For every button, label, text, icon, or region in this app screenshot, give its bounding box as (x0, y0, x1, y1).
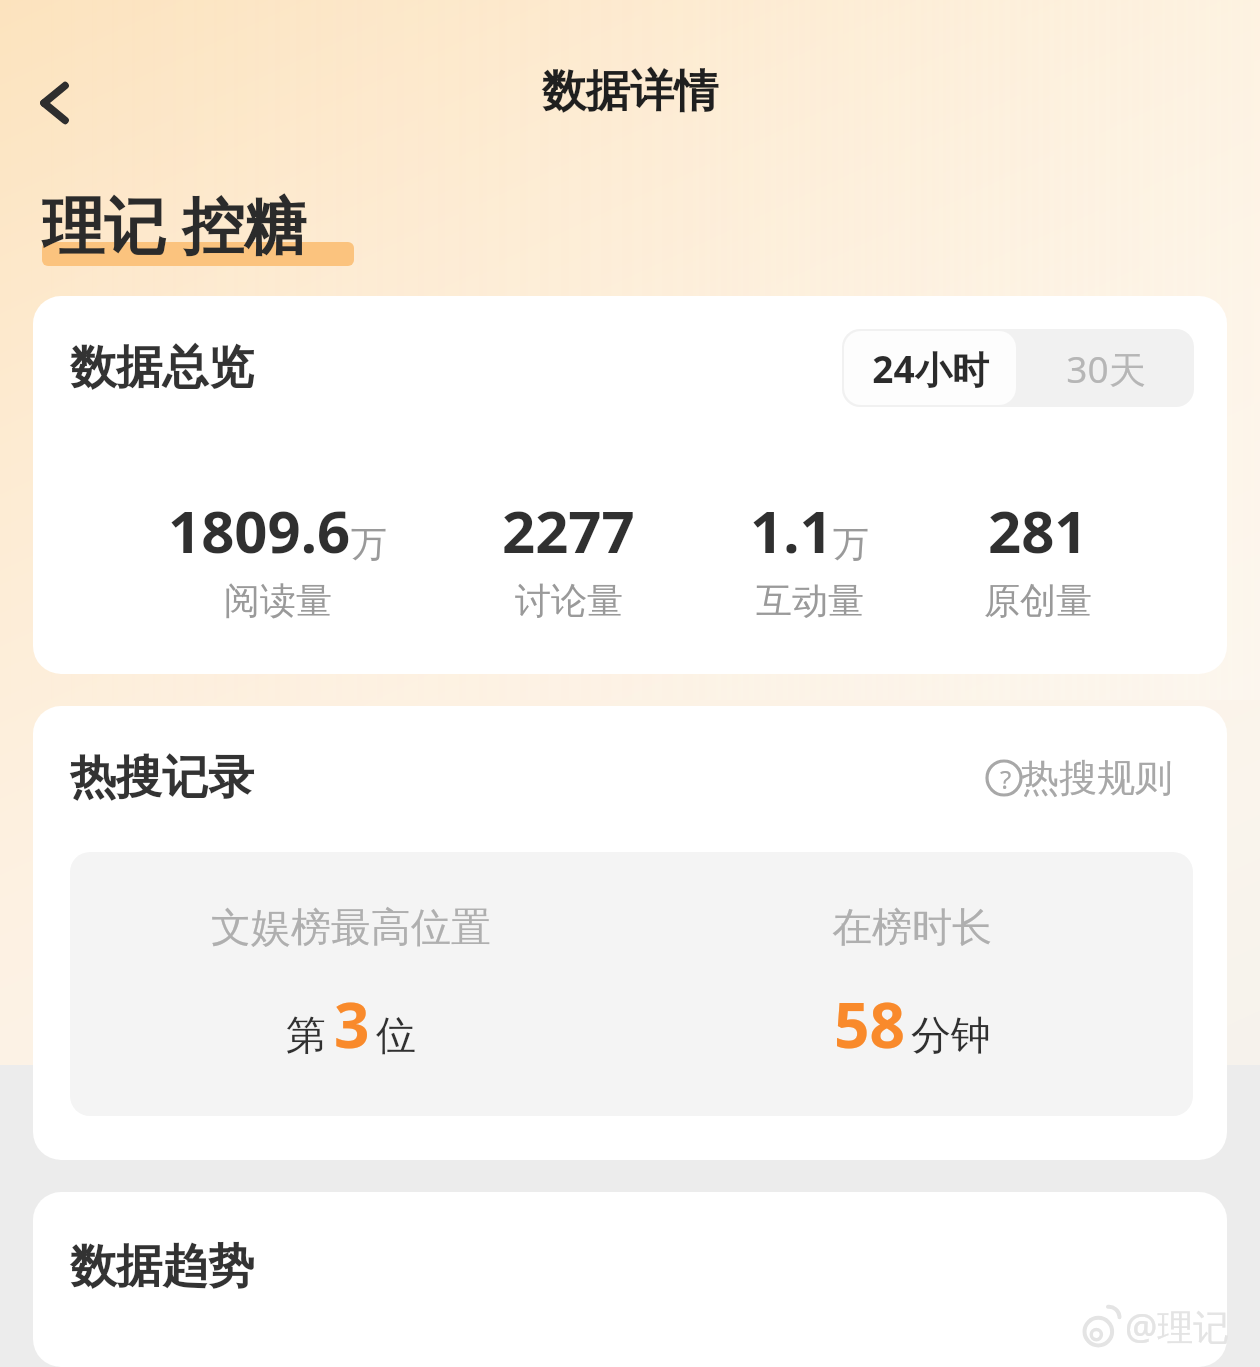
staticText: 数据详情 (542, 64, 718, 119)
staticText: ? (1000, 761, 1012, 796)
staticText: 2277 (502, 491, 635, 570)
staticText: 热搜规则 (1021, 754, 1173, 802)
staticText: 在榜时长 (832, 902, 992, 952)
staticText: 3 (334, 982, 370, 1066)
staticText: 互动量 (756, 578, 864, 623)
staticText: 万 (833, 521, 869, 566)
staticText: 位 (376, 1010, 416, 1060)
staticText: 1.1 (750, 491, 833, 570)
button[interactable]: Back (12, 60, 98, 146)
staticText: @理记 (1125, 1302, 1230, 1351)
button[interactable]: ? (979, 748, 1197, 808)
staticText: 30天 (1066, 343, 1146, 394)
staticText: 分钟 (911, 1010, 991, 1060)
staticText: 数据趋势 (70, 1238, 254, 1296)
staticText: 万 (351, 521, 387, 566)
staticText: 281 (988, 491, 1088, 570)
staticText: 1809.6 (168, 491, 351, 570)
staticText: 阅读量 (224, 578, 332, 623)
staticText: 文娱榜最高位置 (211, 902, 491, 952)
staticText: 热搜记录 (70, 749, 254, 807)
staticText: 58 (834, 982, 905, 1066)
staticText: 理记 控糖 (42, 182, 307, 267)
staticText: 讨论量 (515, 578, 623, 623)
button[interactable]: 24小时 (844, 331, 1016, 405)
staticText: 原创量 (984, 578, 1092, 623)
staticText: 第 (286, 1010, 326, 1060)
staticText: 24小时 (872, 343, 989, 394)
staticText: 数据总览 (70, 339, 254, 397)
button[interactable]: 30天 (1018, 329, 1194, 407)
